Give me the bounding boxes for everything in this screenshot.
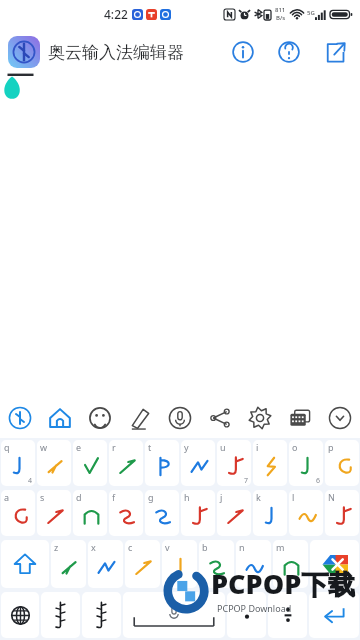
button[interactable]: Settings	[240, 398, 280, 438]
staticText: PCPOP下载	[211, 565, 356, 602]
staticText: l	[292, 491, 295, 503]
button[interactable]: Help	[272, 35, 306, 69]
staticText: 7	[244, 476, 249, 486]
staticText: v	[165, 541, 170, 553]
button[interactable]: h	[181, 490, 215, 536]
staticText: c	[128, 541, 133, 553]
staticText: z	[54, 541, 59, 553]
staticText: 811	[275, 6, 286, 14]
button[interactable]: o	[289, 440, 323, 486]
button[interactable]: Period	[227, 592, 266, 638]
button[interactable]: Keyboard layout	[280, 398, 320, 438]
button[interactable]: p	[325, 440, 359, 486]
staticText: k	[256, 491, 261, 503]
button[interactable]: d	[73, 490, 107, 536]
staticText: n	[239, 541, 245, 553]
staticText: a	[4, 491, 10, 503]
button[interactable]: Change language	[1, 592, 39, 638]
button[interactable]: i	[253, 440, 287, 486]
button[interactable]: a	[1, 490, 35, 536]
button[interactable]: Voice input	[160, 398, 200, 438]
button[interactable]: Mongolian word	[41, 592, 80, 638]
staticText: 4:22	[104, 6, 128, 22]
button[interactable]: e	[73, 440, 107, 486]
staticText: e	[76, 441, 82, 453]
button[interactable]: Symbols	[268, 592, 307, 638]
button[interactable]: Information	[226, 35, 260, 69]
button[interactable]: N	[325, 490, 359, 536]
button[interactable]: Share	[200, 398, 240, 438]
button[interactable]: f	[109, 490, 143, 536]
staticText: f	[112, 491, 116, 503]
button[interactable]: b	[199, 540, 234, 588]
staticText: q	[4, 441, 10, 453]
button[interactable]: Input method	[0, 398, 40, 438]
button[interactable]: Space	[123, 592, 225, 638]
staticText: 奥云输入法编辑器	[48, 42, 184, 63]
button[interactable]: Emoji	[80, 398, 120, 438]
staticText: 5G	[307, 9, 315, 17]
button[interactable]: m	[273, 540, 308, 588]
button[interactable]: w	[37, 440, 71, 486]
button[interactable]: Enter	[309, 592, 359, 638]
staticText: d	[76, 491, 82, 503]
staticText: r	[112, 441, 116, 453]
staticText: t	[148, 441, 152, 453]
button[interactable]: u	[217, 440, 251, 486]
button[interactable]: Mongolian word	[82, 592, 121, 638]
staticText: g	[148, 491, 154, 503]
staticText: m	[276, 541, 285, 553]
staticText: b	[202, 541, 208, 553]
button[interactable]: Share	[318, 35, 352, 69]
staticText: s	[40, 491, 45, 503]
staticText: o	[292, 441, 298, 453]
staticText: N	[328, 491, 335, 503]
staticText: p	[328, 441, 334, 453]
button[interactable]: g	[145, 490, 179, 536]
button[interactable]: z	[51, 540, 86, 588]
button[interactable]: r	[109, 440, 143, 486]
staticText: B/s	[276, 14, 286, 22]
button[interactable]: App icon	[8, 36, 40, 68]
staticText: i	[256, 441, 259, 453]
button[interactable]: c	[125, 540, 160, 588]
staticText: y	[184, 441, 189, 453]
button[interactable]: s	[37, 490, 71, 536]
button[interactable]: q	[1, 440, 35, 486]
staticText: PCPOP Download	[217, 602, 292, 614]
button[interactable]: Handwriting	[120, 398, 160, 438]
button[interactable]: t	[145, 440, 179, 486]
button[interactable]: Shift	[1, 540, 49, 588]
button[interactable]: Home	[40, 398, 80, 438]
staticText: h	[184, 491, 190, 503]
staticText: u	[220, 441, 226, 453]
button[interactable]: x	[88, 540, 123, 588]
staticText: x	[91, 541, 96, 553]
button[interactable]: n	[236, 540, 271, 588]
staticText: j	[220, 491, 223, 503]
staticText: 4	[28, 476, 33, 486]
button[interactable]: k	[253, 490, 287, 536]
staticText: w	[40, 441, 48, 453]
button[interactable]: j	[217, 490, 251, 536]
button[interactable]: l	[289, 490, 323, 536]
button[interactable]: Backspace	[310, 540, 359, 588]
button[interactable]: Collapse keyboard	[320, 398, 360, 438]
button[interactable]: v	[162, 540, 197, 588]
staticText: 6	[316, 476, 321, 486]
button[interactable]: y	[181, 440, 215, 486]
